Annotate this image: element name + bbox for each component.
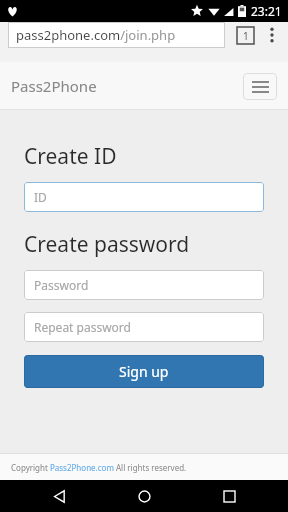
staticText: Create password [24, 230, 190, 259]
button[interactable]: Recent apps [203, 480, 255, 512]
staticText: Sign up [119, 362, 169, 381]
staticText: Repeat password [34, 319, 131, 335]
button[interactable]: Back [33, 480, 85, 512]
button[interactable]: Home [118, 480, 170, 512]
staticText: 23:21 [251, 3, 282, 19]
staticText: Copyright Pass2Phone.com All rights rese… [11, 462, 187, 473]
button[interactable]: Repeat password [24, 312, 264, 342]
staticText: pass2phone.com/join.php [16, 26, 176, 44]
staticText: 1 [243, 29, 249, 43]
button[interactable]: ID [24, 182, 264, 212]
button[interactable]: Pass2Phone [11, 76, 97, 96]
button[interactable]: Password [24, 270, 264, 300]
staticText: ID [34, 189, 47, 205]
button[interactable]: More options [264, 23, 280, 47]
button[interactable]: pass2phone.com/join.php [8, 22, 225, 48]
button[interactable]: Sign up [24, 355, 264, 388]
button[interactable]: Tabs [237, 27, 254, 44]
staticText: Create ID [24, 142, 117, 171]
button[interactable]: Menu [243, 73, 277, 100]
staticText: Password [34, 277, 89, 293]
